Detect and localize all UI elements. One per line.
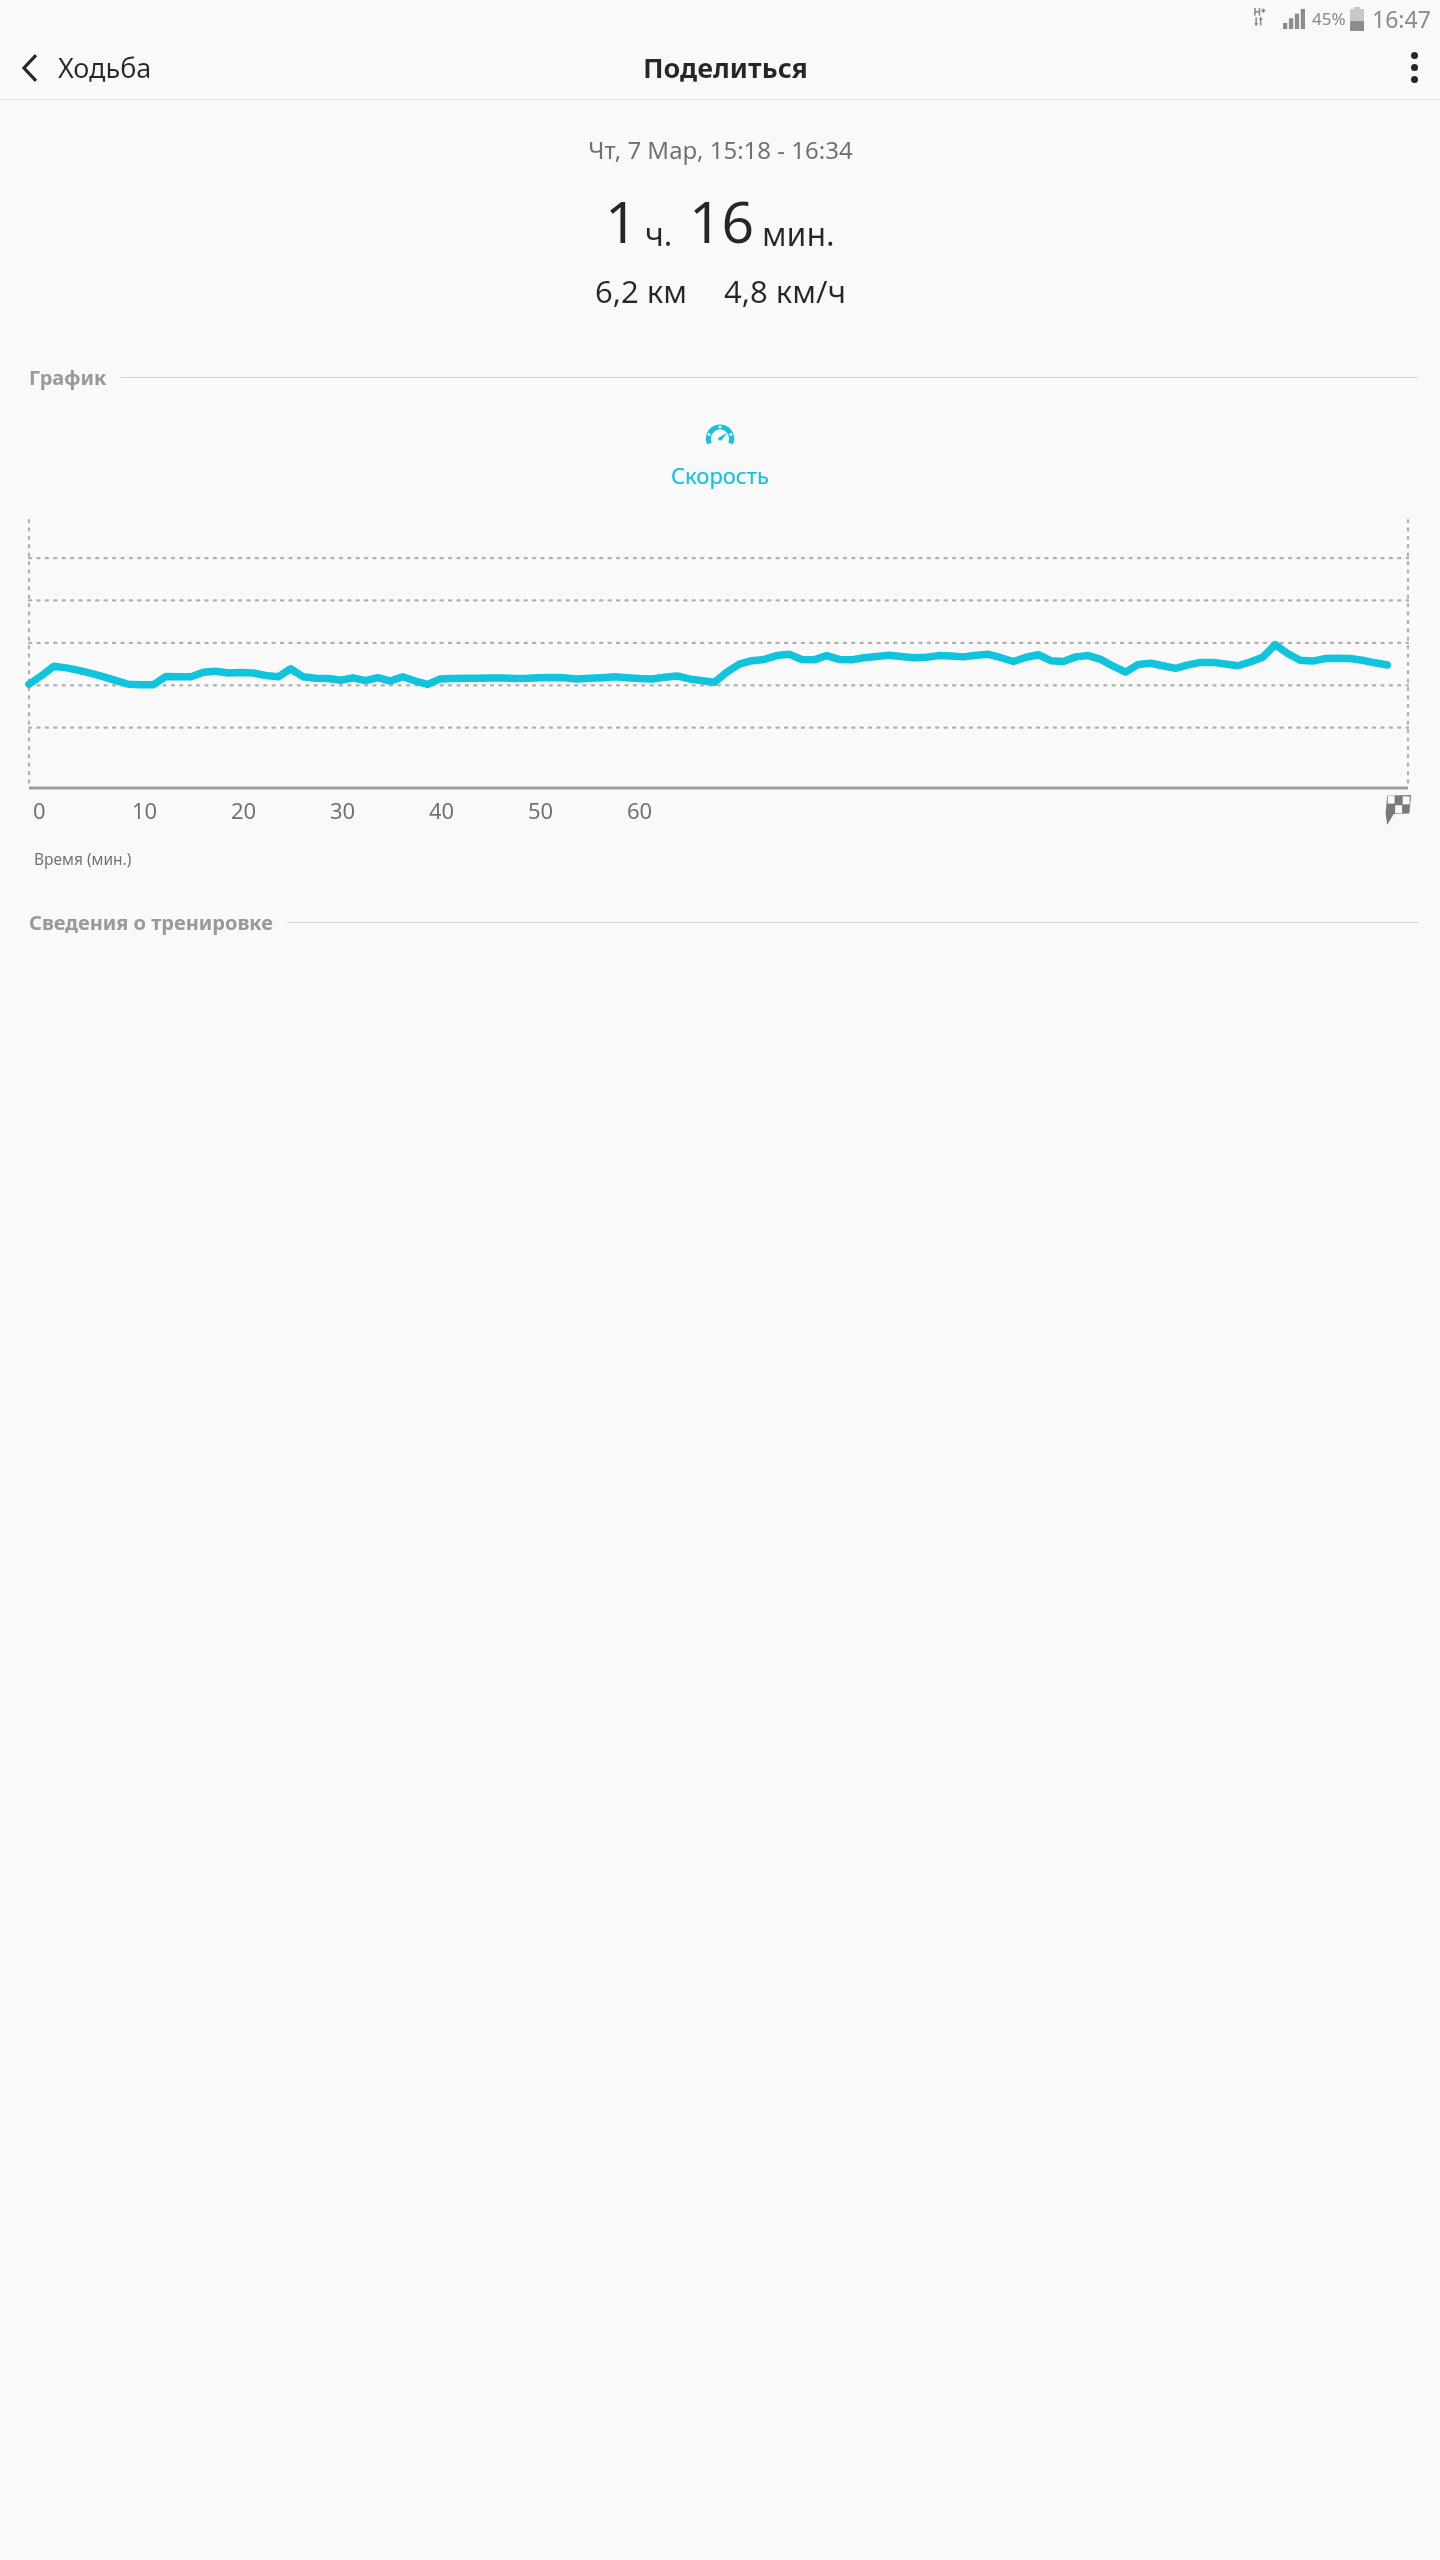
staticText: 45% xyxy=(1312,7,1346,30)
staticText: Чт, 7 Мар, 15:18 - 16:34 xyxy=(588,133,853,166)
staticText: Скорость xyxy=(671,460,769,490)
staticText: ч. xyxy=(645,212,673,256)
button[interactable]: Скорость xyxy=(0,421,1440,490)
staticText: 1 xyxy=(605,182,638,260)
staticText: Сведения о тренировке xyxy=(29,909,273,936)
other: Финиш xyxy=(1382,794,1412,826)
staticText: 4,8 км/ч xyxy=(724,270,846,312)
staticText: 0 xyxy=(33,795,46,825)
staticText: 6,2 км xyxy=(595,270,688,312)
other: Скорость xyxy=(705,421,735,451)
button[interactable]: Поделиться xyxy=(631,41,820,94)
staticText: 10 xyxy=(132,795,158,825)
staticText: Поделиться xyxy=(643,49,808,86)
staticText: 16 xyxy=(689,182,755,260)
staticText: мин. xyxy=(762,212,835,256)
staticText: Ходьба xyxy=(58,49,152,86)
button[interactable]: Назад xyxy=(0,49,166,86)
staticText: 50 xyxy=(528,795,554,825)
staticText: Время (мин.) xyxy=(34,848,132,869)
staticText: 16:47 xyxy=(1372,3,1431,34)
staticText: 40 xyxy=(429,795,455,825)
staticText: 30 xyxy=(330,795,356,825)
staticText: График xyxy=(29,364,107,391)
staticText: 60 xyxy=(627,795,653,825)
staticText: 20 xyxy=(231,795,257,825)
button[interactable]: Ещё xyxy=(1389,42,1440,93)
